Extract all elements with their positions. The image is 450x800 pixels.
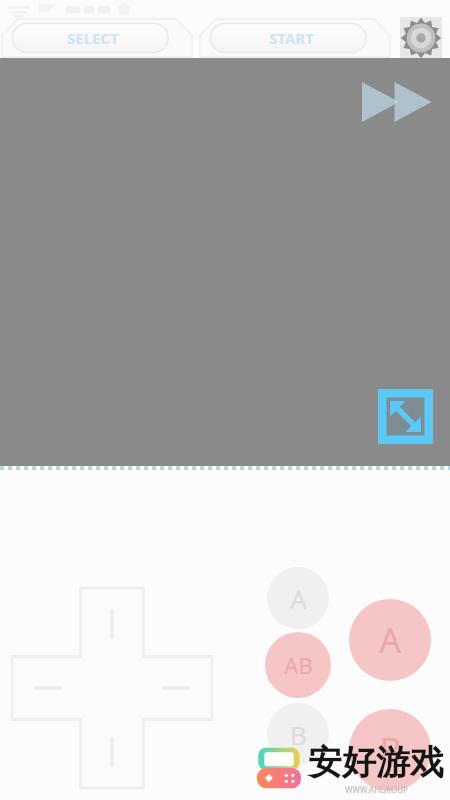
button[interactable]: Button B xyxy=(349,709,431,791)
staticText: AB xyxy=(284,650,313,680)
staticText: A xyxy=(290,581,307,616)
button[interactable]: Fast forward xyxy=(362,82,436,122)
button[interactable]: Resize screen xyxy=(378,389,433,444)
button[interactable]: Button B xyxy=(267,703,329,765)
staticText: A xyxy=(379,617,401,663)
button[interactable]: SELECT xyxy=(2,19,192,57)
button[interactable]: Button A xyxy=(267,567,329,629)
staticText: B xyxy=(379,727,402,773)
button[interactable]: Settings xyxy=(398,15,444,61)
staticText: SELECT xyxy=(67,28,119,48)
button[interactable]: START xyxy=(200,19,390,57)
staticText: 安好游戏 xyxy=(308,741,444,784)
staticText: START xyxy=(269,28,314,48)
button[interactable]: Button A xyxy=(349,599,431,681)
button[interactable]: Button AB xyxy=(265,632,331,698)
staticText: WWW.AHGROUP xyxy=(345,784,408,795)
staticText: B xyxy=(290,717,307,752)
